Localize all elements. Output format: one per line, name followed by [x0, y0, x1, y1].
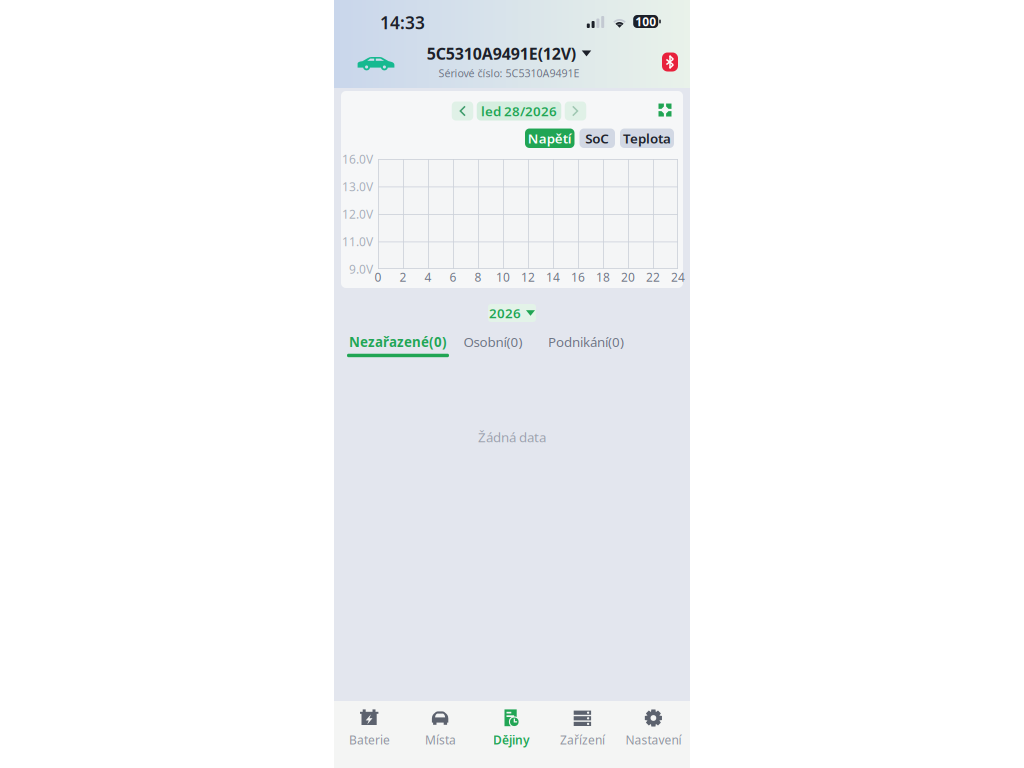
staticText: 12 — [521, 269, 535, 285]
staticText: 22 — [646, 269, 660, 285]
staticText: 13.0V — [342, 178, 373, 194]
staticText: led 28/2026 — [481, 102, 557, 120]
staticText: 11.0V — [342, 233, 373, 249]
staticText: 2026 — [489, 304, 521, 322]
staticText: Osobní(0) — [463, 333, 522, 351]
staticText: Dějiny — [493, 732, 530, 748]
staticText: 24 — [671, 269, 685, 285]
staticText: 0 — [374, 269, 381, 285]
button[interactable]: Vehicle — [354, 51, 398, 75]
staticText: 14 — [546, 269, 560, 285]
button[interactable]: Fullscreen — [654, 99, 676, 121]
staticText: Zařízení — [560, 732, 605, 748]
staticText: 2 — [399, 269, 406, 285]
staticText: 10 — [496, 269, 510, 285]
staticText: 6 — [449, 269, 456, 285]
staticText: Nastavení — [625, 732, 681, 748]
button[interactable]: Osobní(0) — [462, 333, 524, 358]
staticText: 5C5310A9491E(12V) — [427, 43, 576, 64]
staticText: 100 — [635, 13, 656, 29]
button[interactable]: Podnikání(0) — [547, 333, 625, 358]
staticText: 8 — [474, 269, 481, 285]
button[interactable]: Nastavení — [618, 708, 689, 746]
staticText: Baterie — [349, 732, 390, 748]
button[interactable]: led 28/2026 — [477, 101, 561, 120]
button[interactable]: 5C5310A9491E(12V) — [394, 46, 624, 77]
staticText: Sériové číslo: 5C5310A9491E — [438, 66, 579, 80]
staticText: 20 — [621, 269, 635, 285]
button[interactable]: Dějiny — [476, 708, 547, 746]
button[interactable]: Nezařazené(0) — [346, 333, 450, 358]
staticText: 14:33 — [380, 11, 425, 34]
staticText: 9.0V — [349, 261, 373, 277]
staticText: Napětí — [528, 129, 572, 147]
button[interactable]: Napětí — [525, 128, 574, 148]
button[interactable]: Zařízení — [547, 708, 618, 746]
staticText: 4 — [424, 269, 431, 285]
staticText: Podnikání(0) — [548, 333, 624, 351]
staticText: Místa — [425, 732, 456, 748]
button[interactable]: Místa — [405, 708, 476, 746]
staticText: 18 — [596, 269, 610, 285]
staticText: Žádná data — [478, 428, 546, 446]
button[interactable]: 2026 — [488, 304, 536, 322]
button[interactable]: Teplota — [620, 128, 674, 148]
button[interactable]: Baterie — [334, 708, 405, 746]
staticText: 16.0V — [342, 151, 373, 167]
button[interactable]: Bluetooth — [655, 50, 685, 74]
button[interactable]: SoC — [579, 128, 615, 148]
button[interactable]: Previous day — [452, 101, 473, 120]
button[interactable]: Next day — [565, 101, 586, 120]
staticText: Nezařazené(0) — [349, 333, 447, 351]
staticText: 12.0V — [342, 206, 373, 222]
staticText: Teplota — [623, 129, 671, 147]
staticText: SoC — [585, 129, 609, 147]
staticText: 16 — [571, 269, 585, 285]
